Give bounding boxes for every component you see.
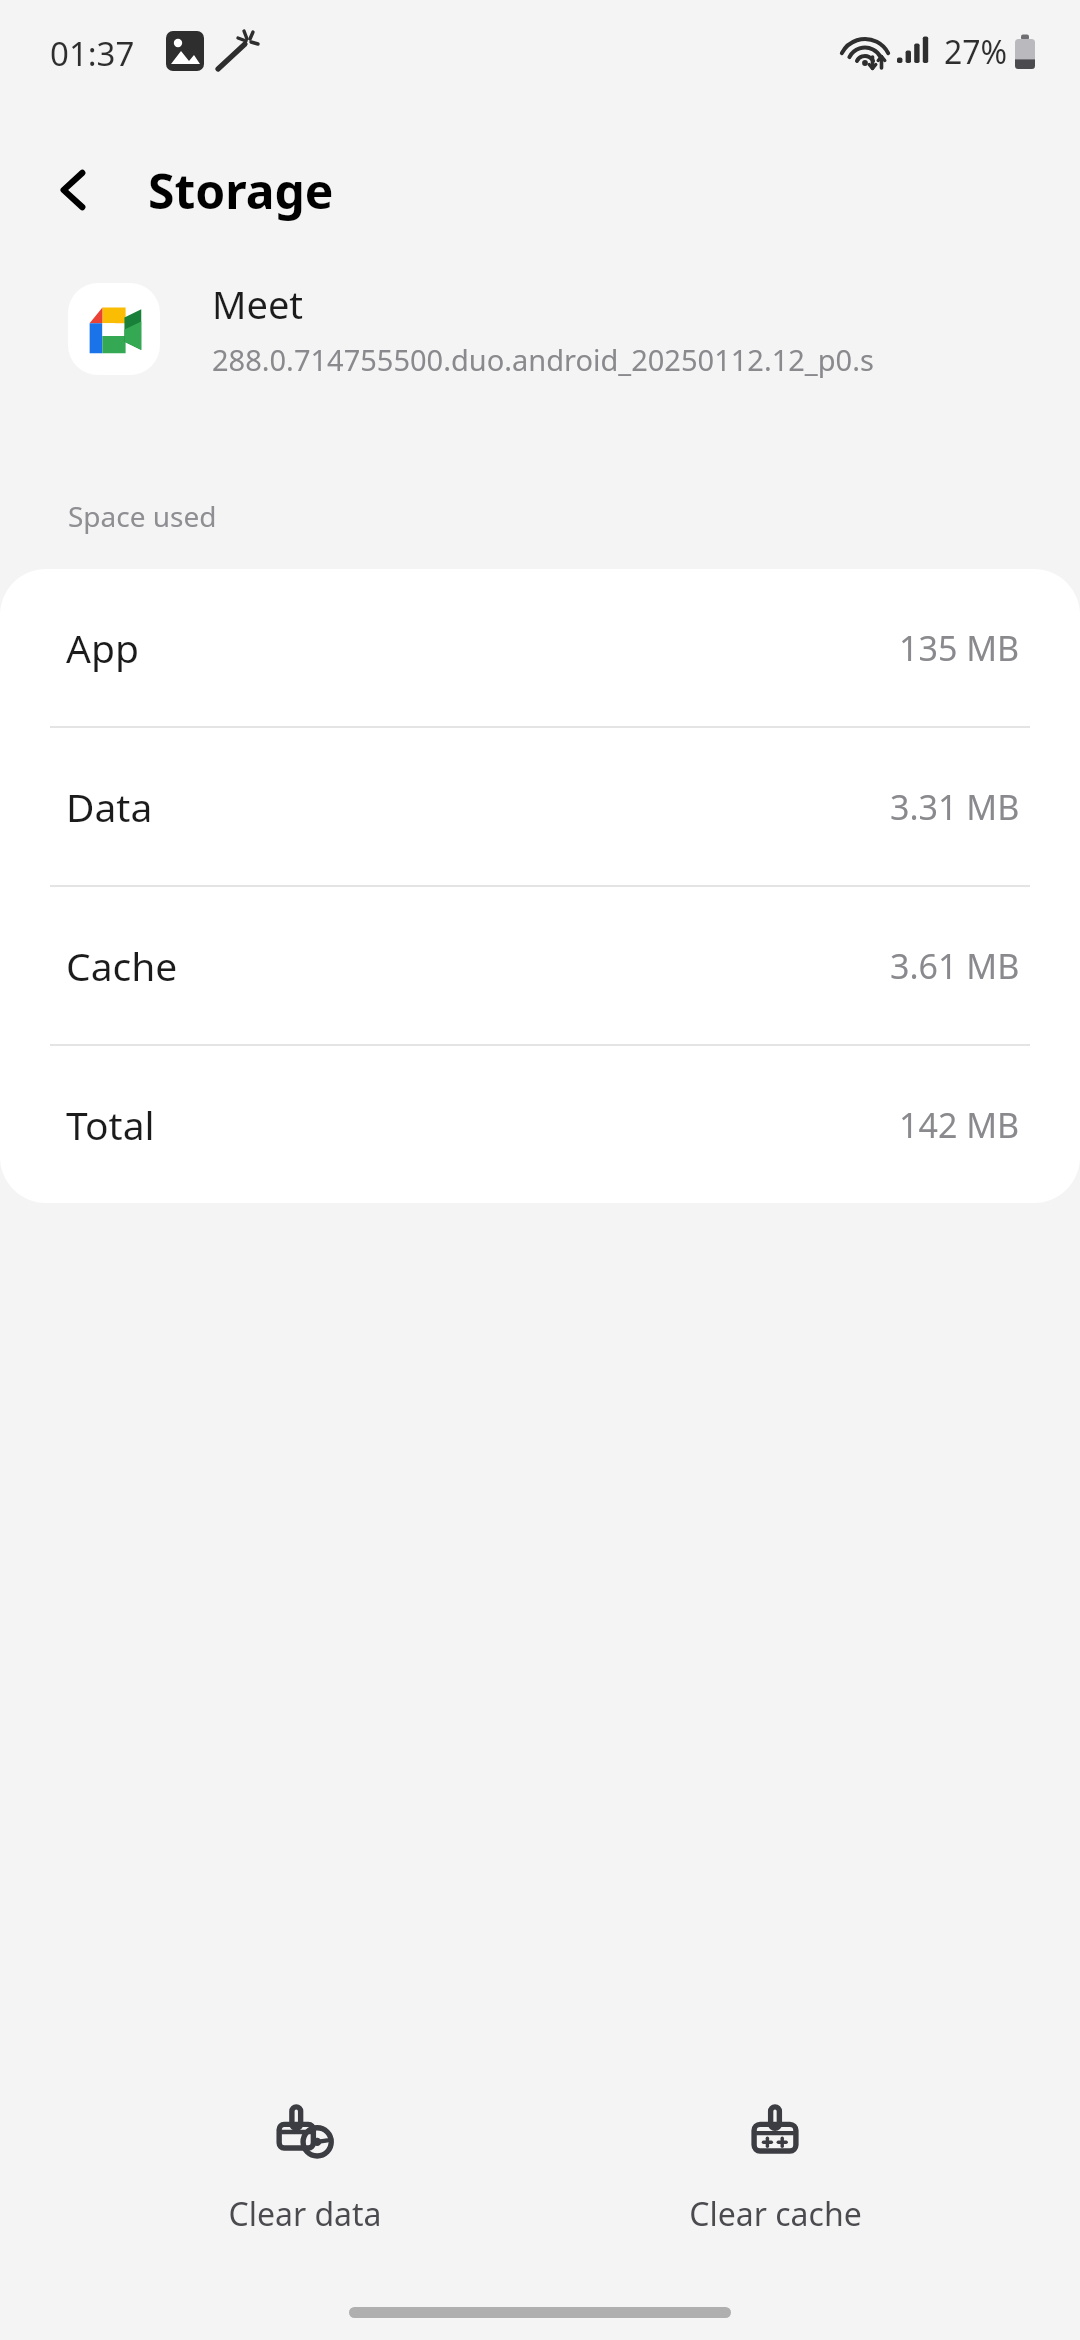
button[interactable]: Total <box>0 1046 1080 1203</box>
staticText: Cache <box>66 939 178 992</box>
button[interactable]: Data <box>0 728 1080 885</box>
staticText: Data <box>66 780 153 833</box>
staticText: Space used <box>68 497 217 535</box>
button[interactable]: App <box>0 569 1080 726</box>
button[interactable]: Back <box>28 144 120 236</box>
staticText: Clear data <box>228 2192 382 2236</box>
staticText: 142 MB <box>899 1102 1020 1148</box>
staticText: 135 MB <box>899 625 1020 671</box>
staticText: App <box>66 621 139 674</box>
staticText: Clear cache <box>689 2192 862 2236</box>
staticText: Storage <box>148 158 334 223</box>
staticText: 3.61 MB <box>890 943 1020 989</box>
button[interactable]: Cache <box>0 887 1080 1044</box>
staticText: Total <box>66 1098 155 1151</box>
staticText: Meet <box>212 278 304 330</box>
button[interactable]: Clear data <box>140 2078 470 2252</box>
staticText: 288.0.714755500.duo.android_20250112.12_… <box>212 340 874 379</box>
button[interactable]: Clear cache <box>610 2078 940 2252</box>
staticText: 01:37 <box>50 31 135 76</box>
staticText: 3.31 MB <box>890 784 1020 830</box>
staticText: 27% <box>944 30 1008 74</box>
